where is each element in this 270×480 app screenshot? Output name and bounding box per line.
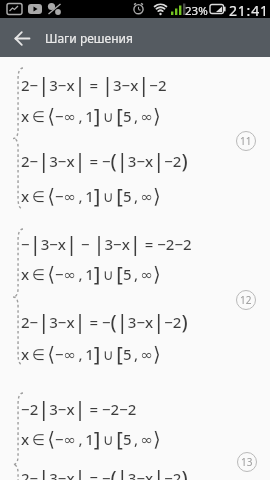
staticText: 11	[240, 134, 252, 148]
staticText: x ∈ ⟨−∞ , 1] ∪ [5 , ∞⟩	[21, 182, 161, 209]
staticText: 12	[240, 293, 252, 307]
staticText: −|3−x| − |3−x| = −2−2	[21, 230, 192, 257]
staticText: 2−|3−x| = −(|3−x|−2)	[21, 308, 188, 335]
button[interactable]: 11	[236, 131, 256, 151]
staticText: −2|3−x| = −2−2	[21, 395, 137, 422]
staticText: 2−|3−x| = |3−x|−2	[21, 71, 167, 98]
staticText: 13	[241, 455, 253, 469]
staticText: x ∈ ⟨−∞ , 1] ∪ [5 , ∞⟩	[21, 340, 161, 367]
button[interactable]: 13	[237, 452, 257, 472]
staticText: x ∈ ⟨−∞ , 1] ∪ [5 , ∞⟩	[21, 425, 161, 452]
staticText: Шаги решения	[45, 30, 133, 46]
staticText: 2−|3−x| = −(|3−x|−2)	[21, 147, 188, 174]
staticText: 23%	[185, 3, 208, 19]
staticText: x ∈ ⟨−∞ , 1] ∪ [5 , ∞⟩	[21, 102, 161, 129]
button[interactable]: 12	[236, 290, 256, 310]
button[interactable]	[7, 23, 37, 53]
staticText: 2−|3−x| = −(|3−x|−2)	[21, 464, 188, 480]
staticText: 21:41	[229, 1, 269, 19]
staticText: x ∈ ⟨−∞ , 1] ∪ [5 , ∞⟩	[21, 260, 161, 287]
